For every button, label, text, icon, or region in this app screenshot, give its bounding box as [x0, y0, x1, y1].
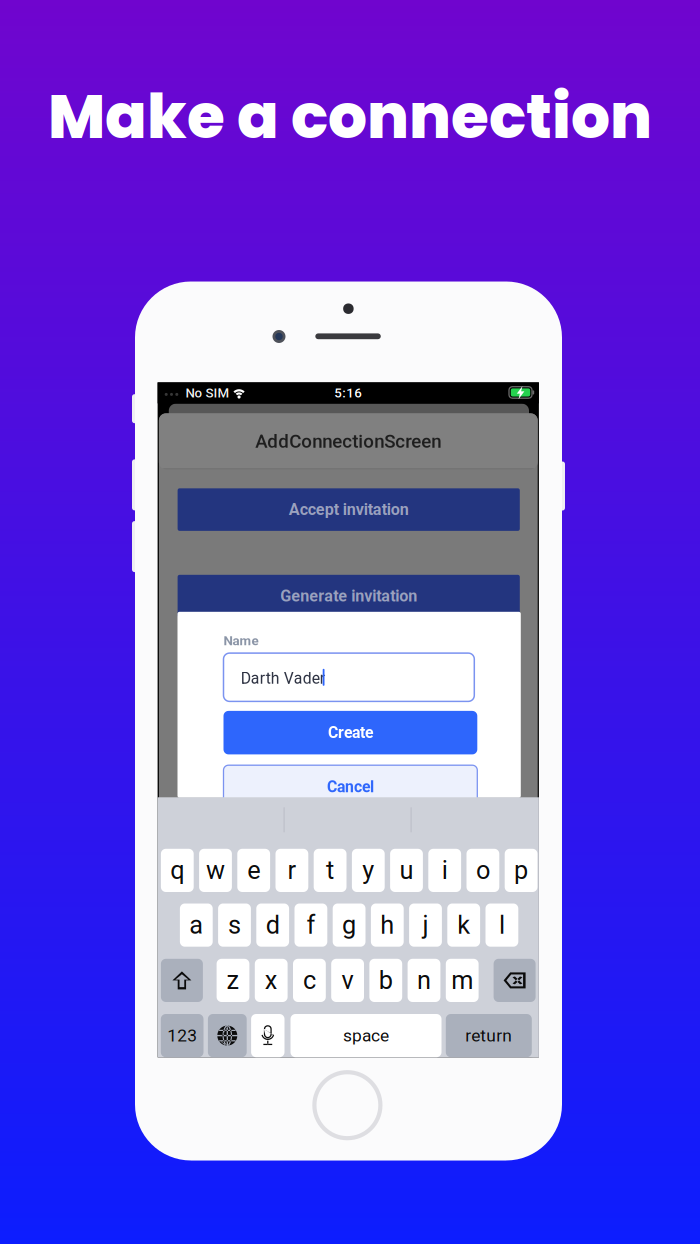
button[interactable]: m: [446, 959, 479, 1002]
staticText: z: [226, 966, 239, 995]
staticText: q: [170, 856, 184, 885]
staticText: space: [343, 1025, 389, 1046]
staticText: g: [342, 910, 356, 940]
staticText: s: [228, 910, 241, 940]
button[interactable]: g: [333, 903, 365, 947]
staticText: o: [476, 856, 490, 885]
staticText: j: [422, 910, 428, 940]
staticText: AddConnectionScreen: [255, 430, 441, 452]
staticText: y: [362, 856, 374, 885]
staticText: r: [287, 856, 296, 885]
button[interactable]: Delete: [494, 959, 536, 1002]
staticText: Darth Vader: [241, 669, 325, 688]
staticText: Cancel: [327, 778, 374, 796]
staticText: n: [417, 966, 431, 995]
staticText: l: [499, 910, 505, 940]
staticText: Make a connection: [48, 74, 652, 159]
staticText: Name: [224, 633, 259, 648]
staticText: f: [306, 910, 315, 940]
button[interactable]: x: [255, 959, 288, 1002]
staticText: u: [399, 856, 413, 885]
button[interactable]: v: [331, 959, 364, 1002]
button[interactable]: Shift: [161, 959, 203, 1002]
staticText: b: [379, 966, 393, 995]
staticText: e: [247, 856, 260, 885]
button[interactable]: Dictate: [251, 1014, 284, 1057]
button[interactable]: p: [505, 849, 537, 892]
button[interactable]: y: [352, 849, 385, 892]
button[interactable]: n: [408, 959, 440, 1002]
button[interactable]: Accept invitation: [178, 488, 520, 531]
staticText: No SIM: [186, 385, 230, 401]
staticText: p: [514, 856, 528, 885]
button[interactable]: Create: [223, 711, 477, 754]
staticText: Generate invitation: [280, 587, 417, 605]
staticText: k: [457, 910, 470, 940]
staticText: 123: [167, 1025, 197, 1046]
button[interactable]: c: [293, 959, 326, 1002]
staticText: 5:16: [334, 385, 362, 401]
button[interactable]: b: [369, 959, 402, 1002]
staticText: t: [326, 856, 334, 885]
staticText: m: [451, 966, 473, 995]
button[interactable]: h: [371, 903, 404, 947]
button[interactable]: 123: [161, 1014, 203, 1057]
staticText: v: [342, 966, 354, 995]
staticText: h: [380, 910, 394, 940]
button[interactable]: u: [390, 849, 423, 892]
button[interactable]: w: [199, 849, 232, 892]
staticText: i: [442, 856, 448, 885]
staticText: a: [189, 910, 203, 940]
button[interactable]: q: [161, 849, 194, 892]
button[interactable]: s: [218, 903, 251, 947]
staticText: Accept invitation: [289, 500, 409, 519]
button[interactable]: l: [485, 903, 518, 947]
button[interactable]: f: [294, 903, 327, 947]
button[interactable]: a: [180, 903, 213, 947]
button[interactable]: z: [217, 959, 249, 1002]
staticText: return: [465, 1025, 512, 1046]
button[interactable]: k: [447, 903, 480, 947]
button[interactable]: r: [275, 849, 308, 892]
button[interactable]: e: [237, 849, 270, 892]
button[interactable]: space: [290, 1014, 441, 1057]
staticText: w: [206, 856, 225, 885]
staticText: d: [266, 910, 280, 940]
staticText: c: [303, 966, 316, 995]
staticText: x: [265, 966, 278, 995]
button[interactable]: o: [466, 849, 499, 892]
button[interactable]: Cancel: [223, 765, 477, 809]
button[interactable]: Switch keyboard: [208, 1014, 247, 1057]
button[interactable]: return: [446, 1014, 532, 1057]
button[interactable]: d: [256, 903, 289, 947]
button[interactable]: Generate invitation: [178, 575, 520, 617]
staticText: Create: [328, 723, 373, 742]
button[interactable]: i: [428, 849, 461, 892]
button[interactable]: j: [409, 903, 442, 947]
button[interactable]: t: [314, 849, 346, 892]
